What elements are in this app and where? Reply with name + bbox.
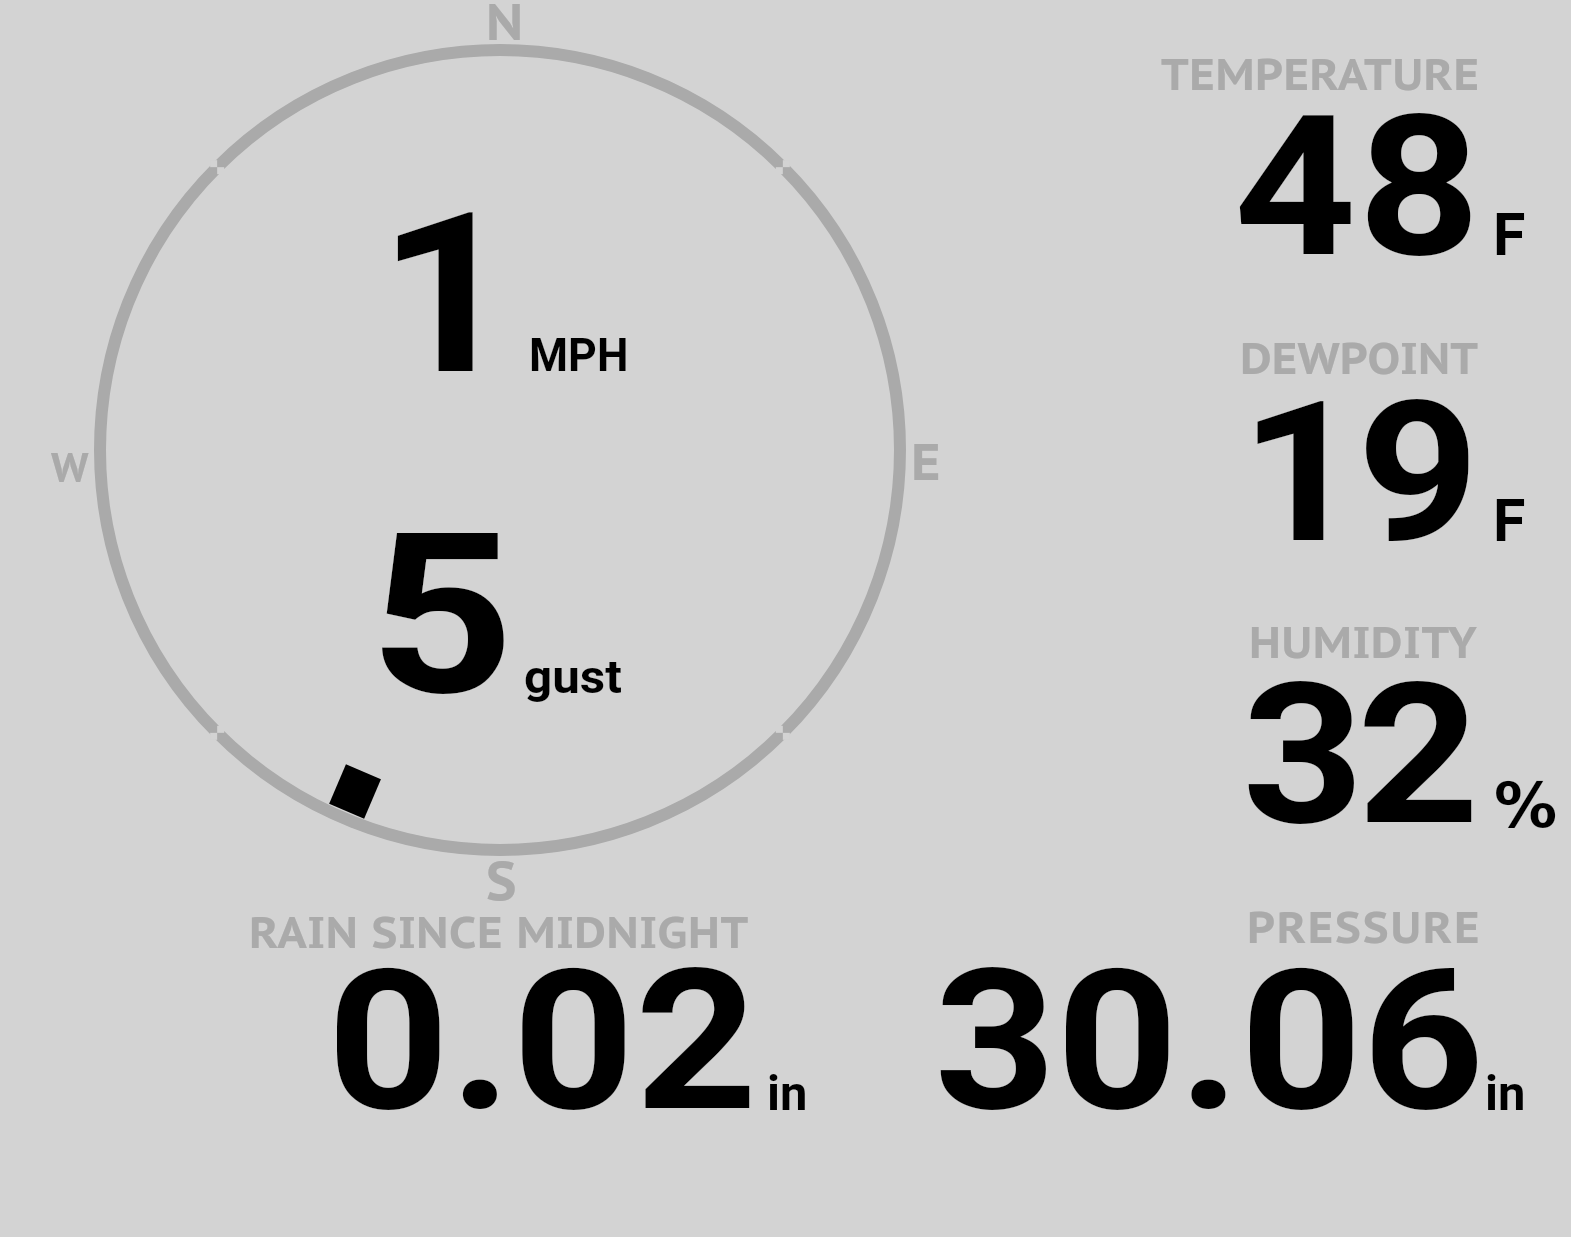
staticText: HUMIDITY <box>1249 612 1478 670</box>
staticText: N <box>486 0 524 54</box>
staticText: 48 <box>1234 74 1483 301</box>
staticText: in <box>767 1065 808 1122</box>
button[interactable]: Rain since midnight 0.02 inches <box>200 890 820 1130</box>
button[interactable]: Wind direction and speed dial <box>60 10 940 890</box>
staticText: 19 <box>1240 360 1474 587</box>
staticText: W <box>51 441 89 493</box>
staticText: RAIN SINCE MIDNIGHT <box>249 902 749 960</box>
staticText: MPH <box>529 328 629 382</box>
staticText: 1 <box>378 164 517 425</box>
staticText: % <box>1494 769 1558 842</box>
staticText: TEMPERATURE <box>1161 44 1480 102</box>
staticText: F <box>1493 486 1526 555</box>
button[interactable]: Humidity 32 percent <box>1000 600 1560 850</box>
button[interactable]: Temperature 48 degrees F <box>1000 30 1560 280</box>
staticText: gust <box>524 649 623 704</box>
button[interactable]: Pressure 30.06 inches <box>900 890 1540 1130</box>
button[interactable]: Dewpoint 19 degrees F <box>1000 315 1560 565</box>
staticText: F <box>1493 200 1526 269</box>
staticText: DEWPOINT <box>1240 328 1479 386</box>
staticText: 5 <box>369 485 514 746</box>
staticText: E <box>911 427 941 494</box>
staticText: 30.06 <box>934 928 1485 1155</box>
staticText: in <box>1485 1065 1526 1122</box>
staticText: 0.02 <box>327 928 758 1155</box>
staticText: 32 <box>1242 642 1473 869</box>
staticText: S <box>486 846 517 915</box>
staticText: PRESSURE <box>1247 897 1482 955</box>
